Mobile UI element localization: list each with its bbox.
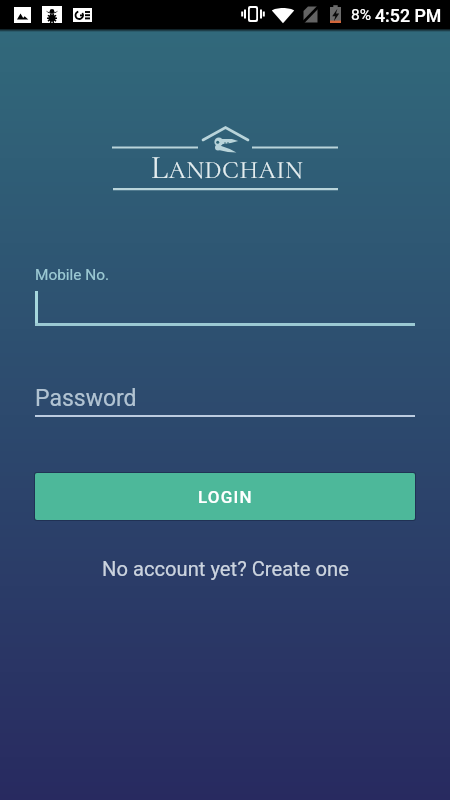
staticText: Password [35, 385, 137, 412]
button[interactable]: Password [35, 381, 415, 417]
staticText: LANDCHAIN [151, 149, 304, 187]
staticText: 8% [351, 6, 372, 24]
staticText: LOGIN [198, 487, 253, 507]
button[interactable] [35, 286, 415, 326]
button[interactable]: LOGIN [35, 473, 415, 520]
button[interactable]: No account yet? Create one [92, 551, 359, 587]
staticText: Mobile No. [35, 266, 110, 284]
staticText: 4:52 PM [375, 5, 442, 26]
